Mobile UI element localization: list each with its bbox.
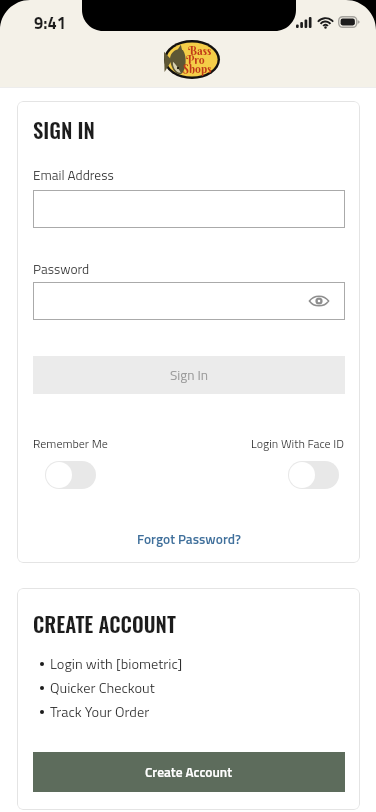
staticText: Password [33,259,90,280]
staticText: Shops [183,62,212,76]
staticText: Quicker Checkout [50,677,155,699]
button[interactable]: Sign In [33,356,345,394]
staticText: Sign In [170,365,209,386]
staticText: CREATE ACCOUNT [33,609,176,639]
button[interactable]: Password [33,282,345,320]
button[interactable]: Show password [305,287,333,315]
staticText: Login With Face ID [251,434,344,452]
staticText: Bass [188,44,212,58]
button[interactable]: Create Account [33,752,345,792]
staticText: Track Your Order [50,701,150,723]
button[interactable]: Forgot Password? [137,529,241,550]
staticText: Login with [biometric] [50,653,183,675]
button[interactable]: Toggle [45,461,96,489]
button[interactable]: Email Address [33,190,345,228]
staticText: Create Account [145,762,233,783]
staticText: Email Address [33,165,114,186]
staticText: Pro [186,53,205,67]
staticText: 9:41 [34,10,66,35]
button[interactable]: Toggle [288,461,339,489]
staticText: SIGN IN [33,115,95,145]
staticText: Remember Me [33,434,108,452]
